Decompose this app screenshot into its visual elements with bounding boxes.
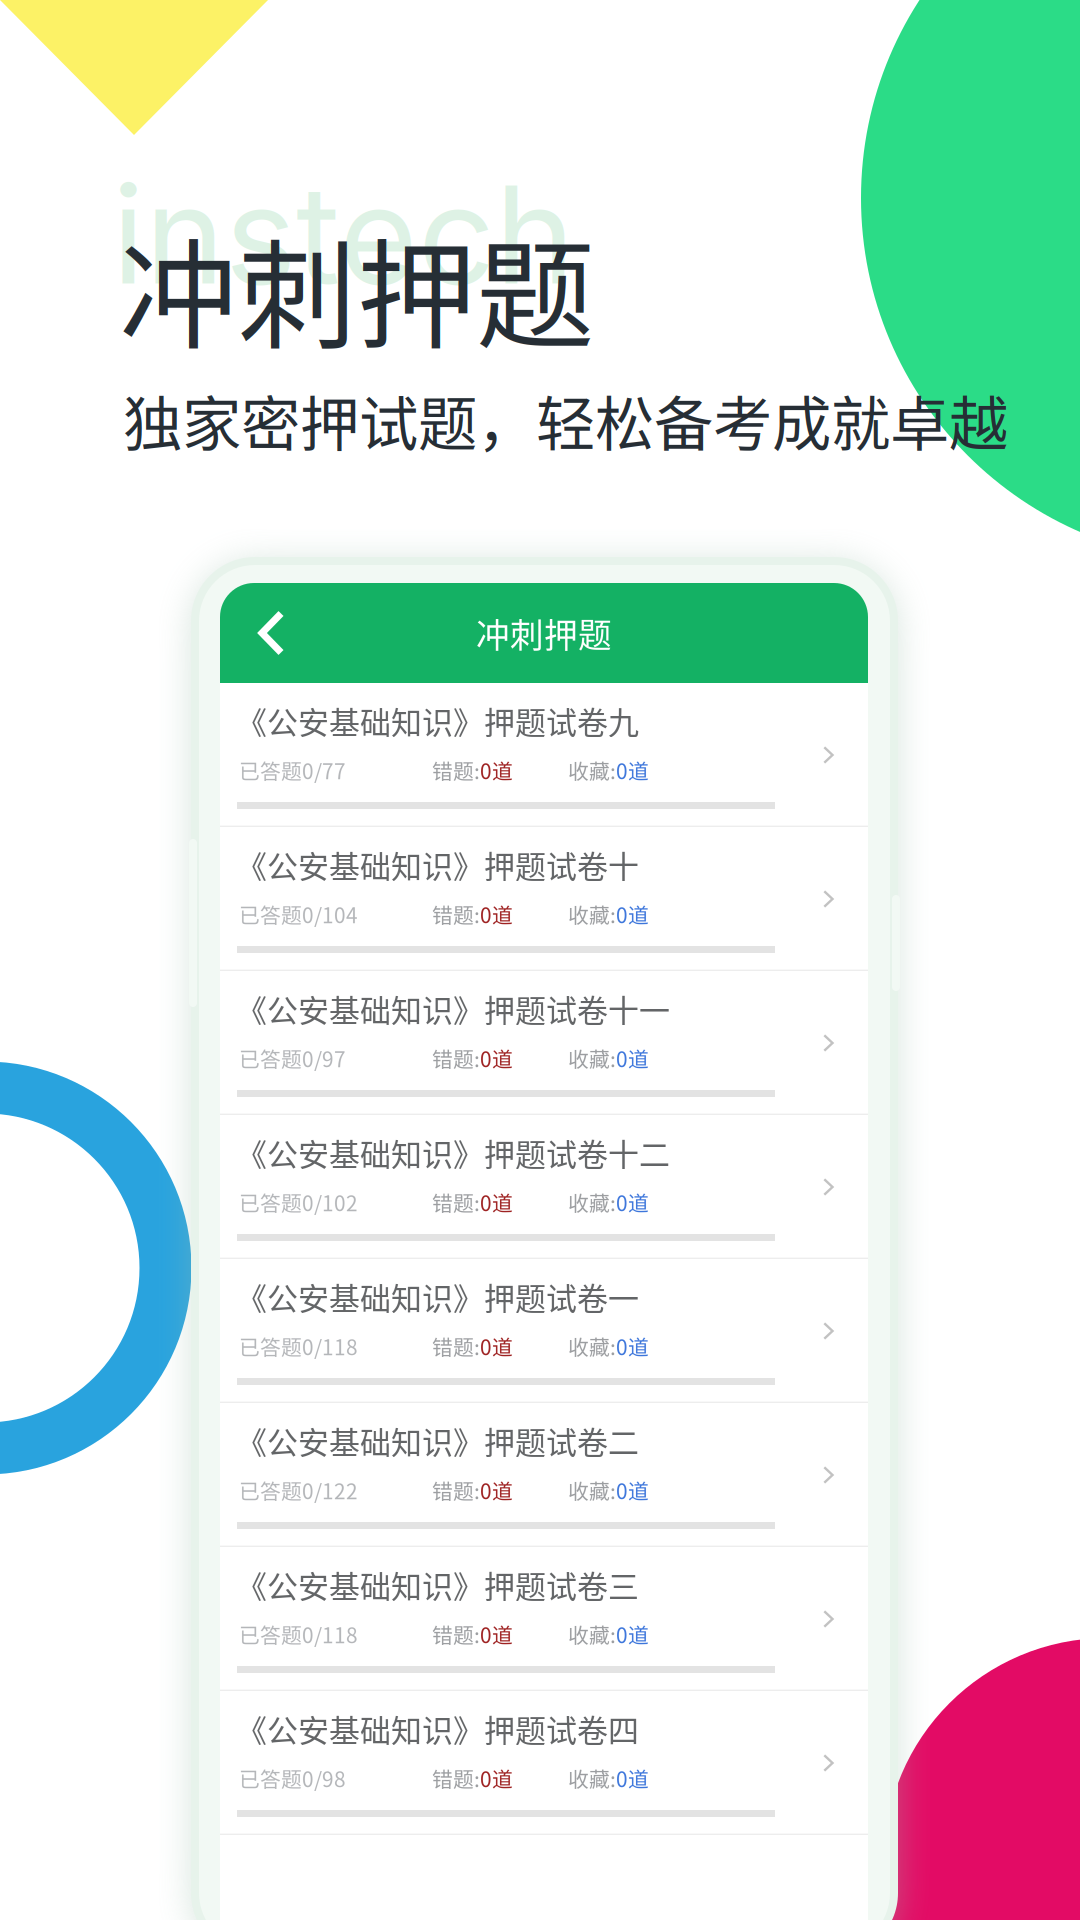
staticText: 错题:: [432, 1331, 480, 1361]
staticText: 错题:: [432, 1619, 480, 1649]
staticText: 冲刺押题: [476, 609, 612, 657]
staticText: 0道: [616, 899, 649, 929]
staticText: 《公安基础知识》押题试卷十: [236, 842, 639, 887]
staticText: 错题:: [432, 755, 480, 785]
staticText: 0道: [616, 1475, 649, 1505]
staticText: 《公安基础知识》押题试卷九: [236, 698, 639, 743]
button[interactable]: 《公安基础知识》押题试卷十一: [220, 971, 868, 1115]
staticText: 错题:: [432, 899, 480, 929]
staticText: 收藏:: [568, 1475, 616, 1505]
staticText: 0道: [616, 755, 649, 785]
staticText: 已答题0/122: [239, 1475, 358, 1505]
button[interactable]: 《公安基础知识》押题试卷二: [220, 1403, 868, 1547]
staticText: 0道: [480, 1187, 513, 1217]
button[interactable]: 《公安基础知识》押题试卷四: [220, 1691, 868, 1835]
staticText: 已答题0/97: [239, 1043, 346, 1073]
button[interactable]: 《公安基础知识》押题试卷一: [220, 1259, 868, 1403]
button[interactable]: 返回: [220, 583, 323, 683]
staticText: 收藏:: [568, 1043, 616, 1073]
staticText: 0道: [616, 1187, 649, 1217]
staticText: 已答题0/98: [239, 1763, 346, 1793]
staticText: 0道: [480, 1043, 513, 1073]
staticText: 0道: [480, 1475, 513, 1505]
staticText: 错题:: [432, 1763, 480, 1793]
staticText: 《公安基础知识》押题试卷四: [236, 1706, 639, 1751]
staticText: 0道: [616, 1619, 649, 1649]
staticText: 《公安基础知识》押题试卷三: [236, 1562, 639, 1607]
staticText: 已答题0/118: [239, 1619, 358, 1649]
staticText: 已答题0/77: [239, 755, 346, 785]
staticText: 0道: [480, 1619, 513, 1649]
button[interactable]: 《公安基础知识》押题试卷九: [220, 683, 868, 827]
staticText: 收藏:: [568, 1763, 616, 1793]
button[interactable]: 《公安基础知识》押题试卷十: [220, 827, 868, 971]
staticText: 冲刺押题: [119, 201, 595, 373]
staticText: 0道: [616, 1043, 649, 1073]
staticText: 0道: [480, 1331, 513, 1361]
button[interactable]: 《公安基础知识》押题试卷三: [220, 1547, 868, 1691]
staticText: 错题:: [432, 1187, 480, 1217]
staticText: 《公安基础知识》押题试卷十二: [236, 1130, 670, 1175]
staticText: 已答题0/118: [239, 1331, 358, 1361]
staticText: 独家密押试题，轻松备考成就卓越: [123, 377, 1008, 463]
staticText: 收藏:: [568, 1331, 616, 1361]
staticText: 收藏:: [568, 755, 616, 785]
staticText: 0道: [480, 755, 513, 785]
button[interactable]: 《公安基础知识》押题试卷十二: [220, 1115, 868, 1259]
staticText: 《公安基础知识》押题试卷一: [236, 1274, 639, 1319]
staticText: 收藏:: [568, 1187, 616, 1217]
staticText: 《公安基础知识》押题试卷二: [236, 1418, 639, 1463]
staticText: 收藏:: [568, 1619, 616, 1649]
staticText: 《公安基础知识》押题试卷十一: [236, 986, 670, 1031]
staticText: 0道: [616, 1763, 649, 1793]
staticText: 0道: [480, 899, 513, 929]
staticText: 错题:: [432, 1043, 480, 1073]
staticText: 收藏:: [568, 899, 616, 929]
staticText: 错题:: [432, 1475, 480, 1505]
staticText: 已答题0/104: [239, 899, 358, 929]
staticText: instech: [112, 153, 575, 316]
staticText: 0道: [480, 1763, 513, 1793]
staticText: 0道: [616, 1331, 649, 1361]
staticText: 已答题0/102: [239, 1187, 358, 1217]
